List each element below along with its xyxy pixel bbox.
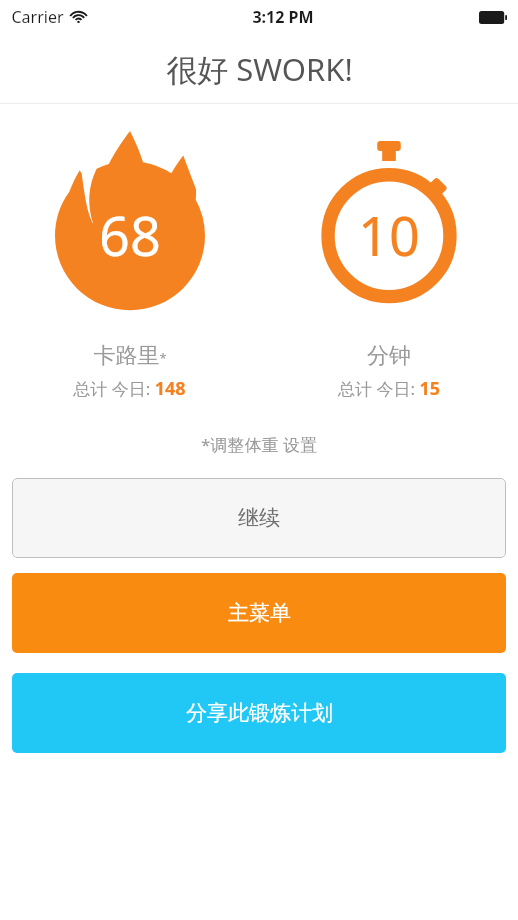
staticText: 10	[358, 198, 420, 272]
button[interactable]: 主菜单	[12, 573, 506, 653]
staticText: 分钟	[367, 342, 411, 370]
staticText: *调整体重 设置	[201, 433, 317, 456]
button[interactable]: *调整体重 设置	[0, 429, 518, 460]
staticText: 总计 今日: 148	[73, 376, 186, 401]
staticText: 分享此锻炼计划	[186, 700, 333, 726]
button[interactable]: 分享此锻炼计划	[12, 673, 506, 753]
staticText: 68	[99, 198, 161, 272]
staticText: 3:12 PM	[252, 6, 314, 28]
staticText: 主菜单	[228, 600, 291, 626]
staticText: 卡路里*	[93, 342, 167, 370]
button[interactable]: 继续	[12, 478, 506, 558]
staticText: 继续	[238, 505, 280, 531]
staticText: 很好 SWORK!	[166, 48, 353, 90]
staticText: Carrier	[11, 6, 64, 28]
staticText: 总计 今日: 15	[338, 376, 440, 401]
